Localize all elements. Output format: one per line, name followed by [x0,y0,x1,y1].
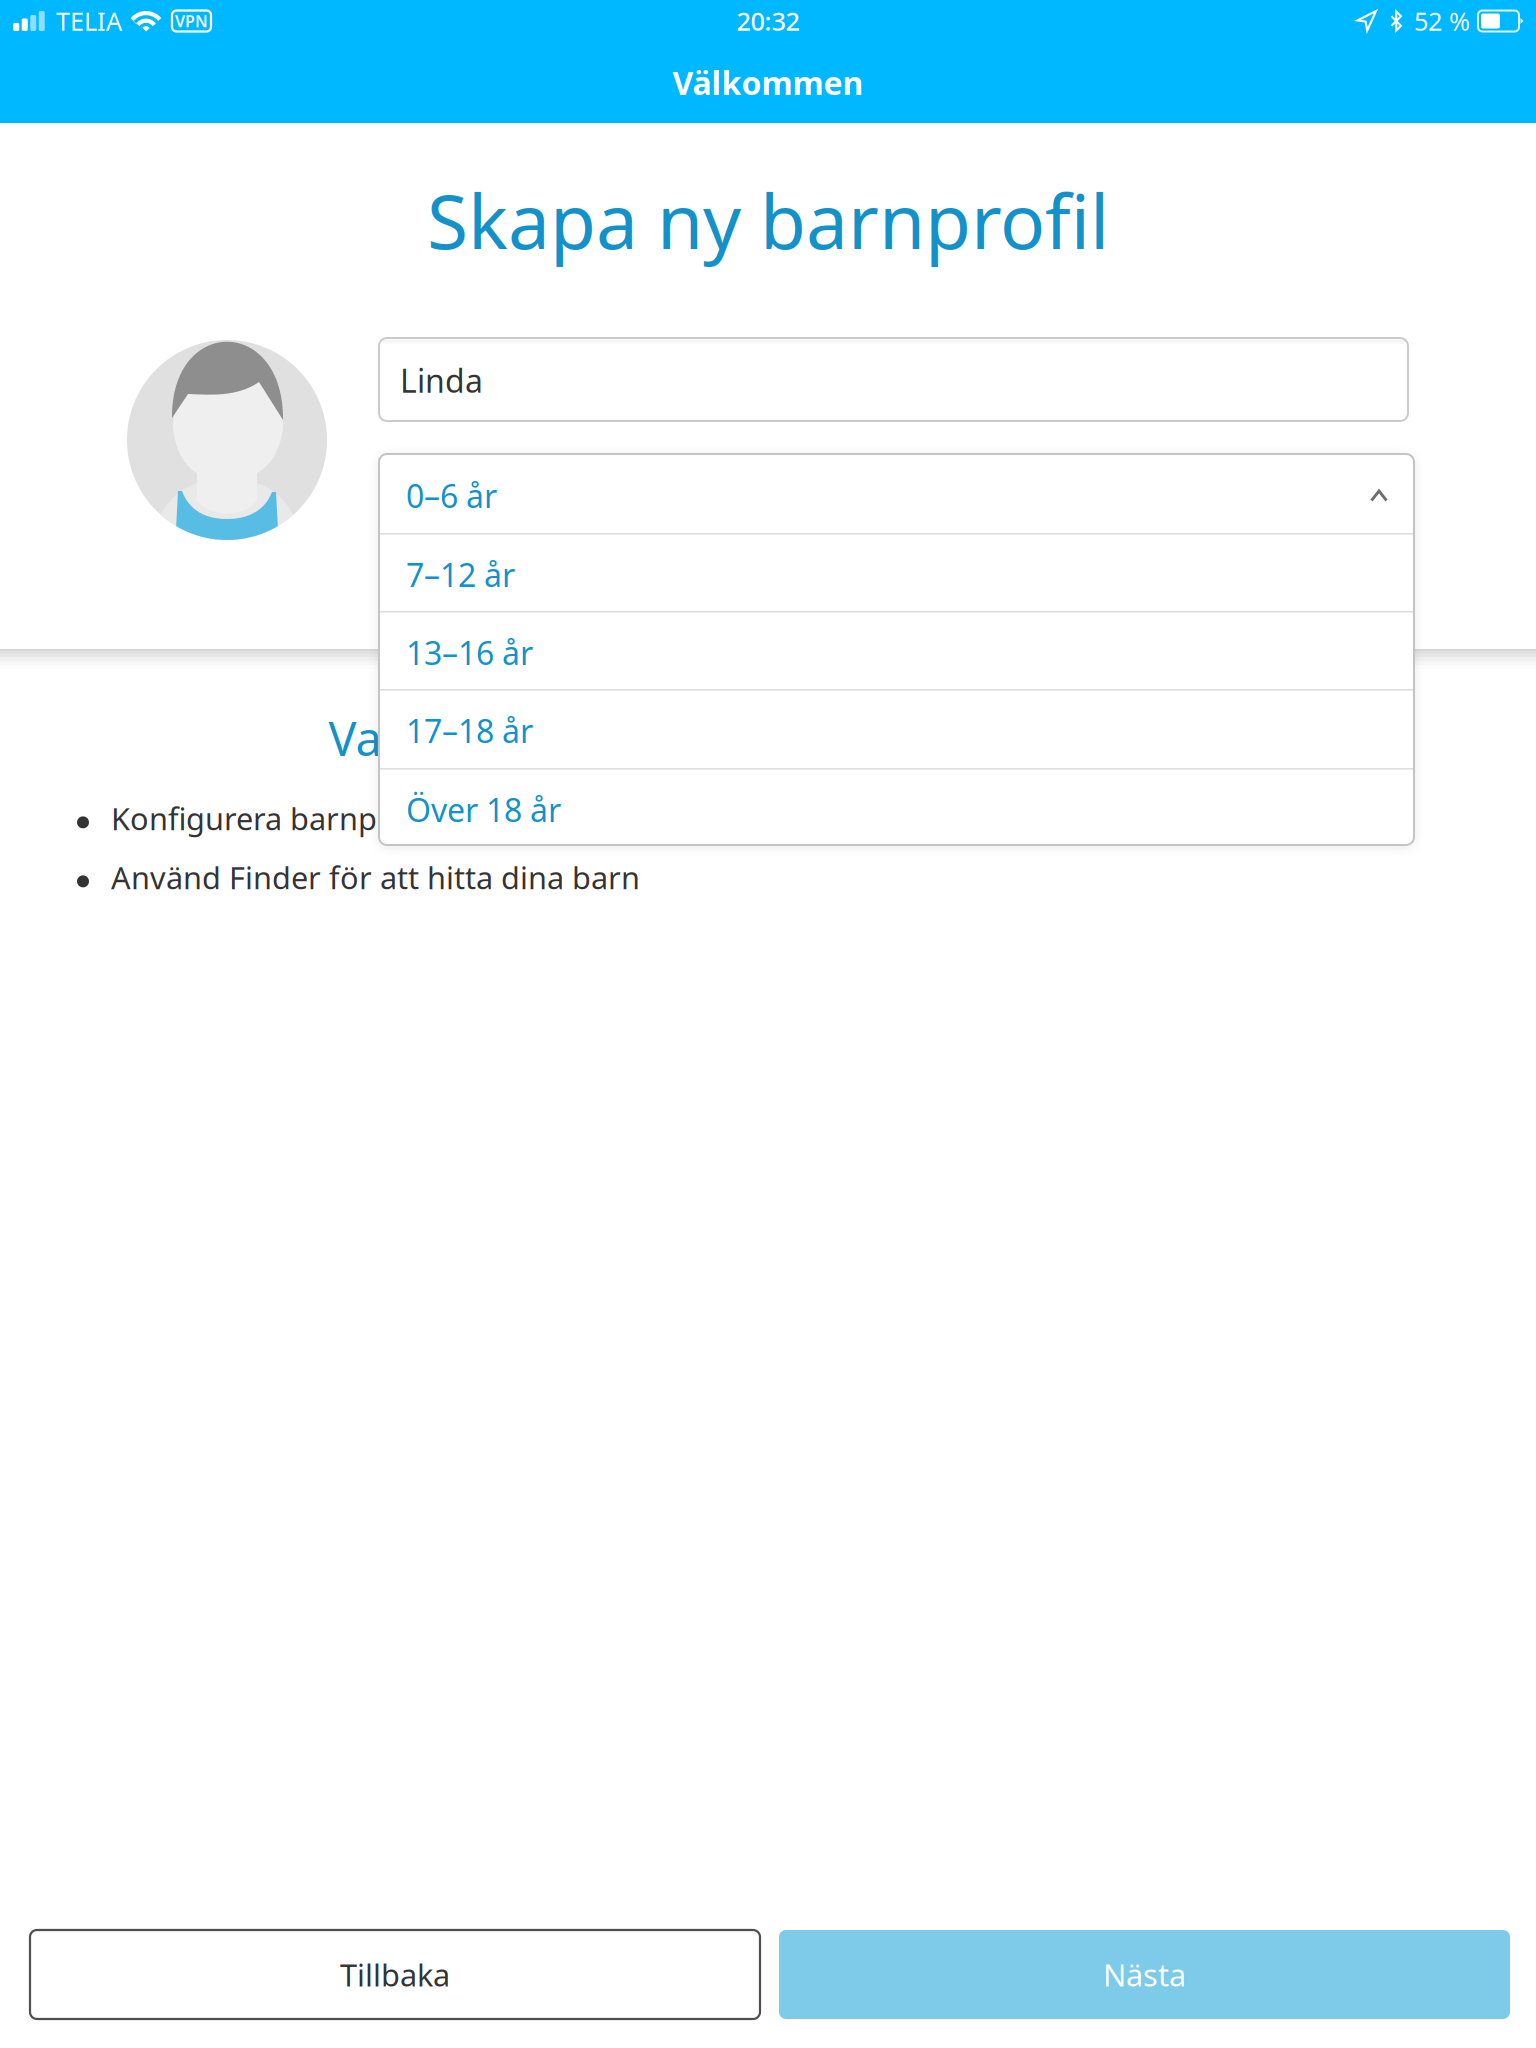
button[interactable]: 0–6 år [379,456,1414,534]
staticText: Tillbaka [340,1954,450,1995]
staticText: Välkommen [672,61,863,104]
button[interactable]: Välj profilbild [127,340,327,540]
staticText: Konfigurera barnprofiler [111,798,464,839]
staticText: TELIA [56,4,122,38]
button[interactable]: 13–16 år [379,613,1414,691]
staticText: 13–16 år [406,631,533,674]
staticText: 20:32 [736,4,799,38]
staticText: VPN [175,10,208,32]
staticText: 7–12 år [406,553,515,596]
button[interactable]: Nästa [779,1930,1510,2019]
button[interactable]: Över 18 år [379,770,1414,848]
staticText: 17–18 år [406,709,533,752]
button[interactable]: Linda [379,338,1408,421]
staticText: Linda [400,359,483,401]
staticText: 52 % [1414,4,1470,38]
staticText: Över 18 år [406,788,561,831]
button[interactable]: 17–18 år [379,691,1414,769]
staticText: Använd Finder för att hitta dina barn [111,857,640,898]
button[interactable]: Tillbaka [30,1930,760,2019]
staticText: 0–6 år [406,474,497,517]
staticText: Nästa [1103,1954,1186,1995]
button[interactable]: 7–12 år [379,535,1414,613]
staticText: Vad vill du göra med barnprofilen Linda? [328,707,1213,769]
staticText: Skapa ny barnprofil [427,170,1109,270]
